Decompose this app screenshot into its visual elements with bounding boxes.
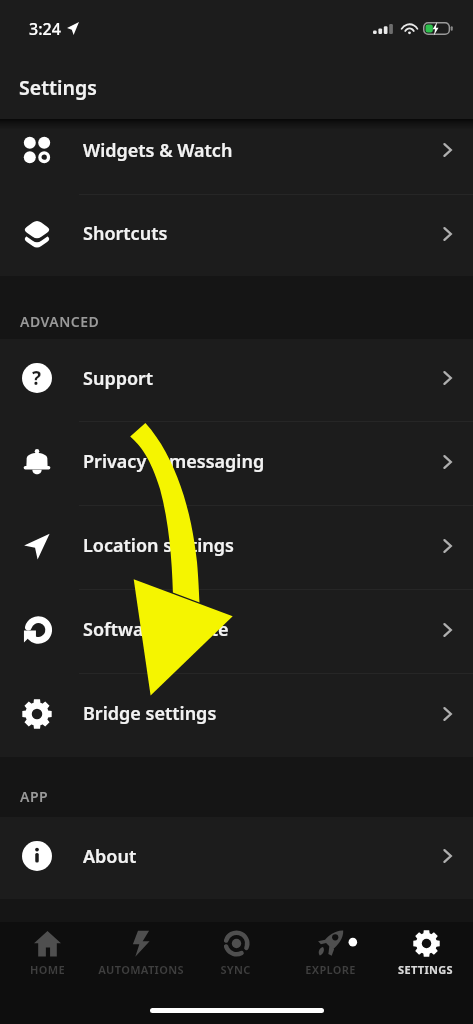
- button[interactable]: Shortcuts: [0, 195, 473, 276]
- staticText: Support: [83, 366, 154, 391]
- button[interactable]: Bridge settings: [0, 674, 473, 757]
- staticText: ADVANCED: [20, 312, 100, 331]
- staticText: HOME: [30, 962, 65, 977]
- button[interactable]: ?: [0, 339, 473, 421]
- button[interactable]: Privacy & messaging: [0, 422, 473, 505]
- staticText: Bridge settings: [83, 701, 217, 726]
- staticText: ?: [32, 365, 42, 391]
- button[interactable]: EXPLORE: [283, 922, 378, 984]
- staticText: AUTOMATIONS: [98, 962, 184, 977]
- staticText: Widgets & Watch: [83, 138, 233, 163]
- staticText: SYNC: [220, 962, 251, 977]
- staticText: Shortcuts: [83, 221, 168, 246]
- staticText: Software update: [83, 617, 229, 642]
- staticText: 3:24: [29, 18, 61, 40]
- button[interactable]: HOME: [0, 922, 94, 984]
- button[interactable]: SYNC: [188, 922, 283, 984]
- staticText: APP: [20, 787, 49, 806]
- staticText: SETTINGS: [398, 962, 453, 977]
- button[interactable]: AUTOMATIONS: [94, 922, 188, 984]
- button[interactable]: About: [0, 817, 473, 899]
- staticText: About: [83, 844, 137, 869]
- staticText: EXPLORE: [305, 962, 356, 977]
- button[interactable]: Location settings: [0, 506, 473, 589]
- button[interactable]: Widgets & Watch: [0, 119, 473, 194]
- staticText: Location settings: [83, 533, 234, 558]
- button[interactable]: Software update: [0, 590, 473, 673]
- staticText: Privacy & messaging: [83, 449, 265, 474]
- button[interactable]: SETTINGS: [378, 922, 473, 984]
- staticText: Settings: [19, 74, 97, 101]
